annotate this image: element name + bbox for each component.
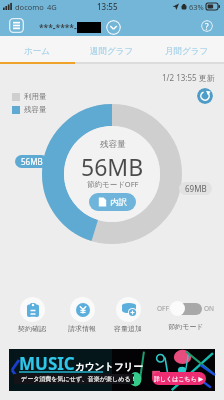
staticText: 残容量 xyxy=(100,139,126,150)
staticText: 56MB xyxy=(81,151,144,182)
staticText: 詳しくはこちら ▶ xyxy=(154,375,204,383)
button[interactable]: 週間グラフ xyxy=(74,36,149,62)
button[interactable]: OFF xyxy=(157,301,215,316)
staticText: 69MB xyxy=(185,183,207,194)
button[interactable]: 契約確認 xyxy=(7,297,57,333)
staticText: MUSIC xyxy=(19,352,75,375)
button[interactable]: 詳しくはこちら ▶ xyxy=(152,372,206,385)
button[interactable]: 内訳 xyxy=(89,193,136,211)
staticText: 4G xyxy=(47,2,57,12)
button[interactable]: 請求情報 xyxy=(57,297,107,333)
staticText: 容量追加 xyxy=(114,324,142,333)
button[interactable]: 月間グラフ xyxy=(149,36,224,62)
button[interactable]: MUSIC カウントフリー 広告 xyxy=(9,349,215,391)
staticText: 節約モードOFF xyxy=(87,179,139,189)
staticText: 節約モード xyxy=(168,322,204,331)
staticText: 契約確認 xyxy=(18,324,46,333)
staticText: ***-****- xyxy=(39,22,77,34)
staticText: 請求情報 xyxy=(68,324,96,333)
button[interactable]: Switch line xyxy=(106,20,121,35)
staticText: ホーム xyxy=(24,46,50,57)
button[interactable]: 容量追加 xyxy=(103,297,153,333)
button[interactable]: Menu xyxy=(9,18,24,33)
staticText: 内訳 xyxy=(110,197,127,208)
staticText: 63% xyxy=(189,2,204,12)
staticText: 利用量 xyxy=(24,92,47,101)
staticText: 56MB xyxy=(21,156,43,167)
staticText: 月間グラフ xyxy=(165,46,209,57)
staticText: 週間グラフ xyxy=(90,46,134,57)
staticText: docomo xyxy=(15,2,44,12)
staticText: 1/2 13:55 更新 xyxy=(162,72,215,83)
staticText: カウントフリー xyxy=(75,361,143,373)
button[interactable]: Help xyxy=(201,20,213,32)
button[interactable]: Refresh xyxy=(197,88,213,104)
staticText: ON xyxy=(204,304,215,313)
staticText: データ消費を気にせず、音楽が楽しめる！ xyxy=(21,375,137,383)
staticText: OFF xyxy=(157,304,169,313)
staticText: ? xyxy=(205,21,209,32)
staticText: 13:55 xyxy=(97,1,118,12)
button[interactable]: ホーム xyxy=(0,36,74,62)
staticText: 残容量 xyxy=(24,105,47,114)
